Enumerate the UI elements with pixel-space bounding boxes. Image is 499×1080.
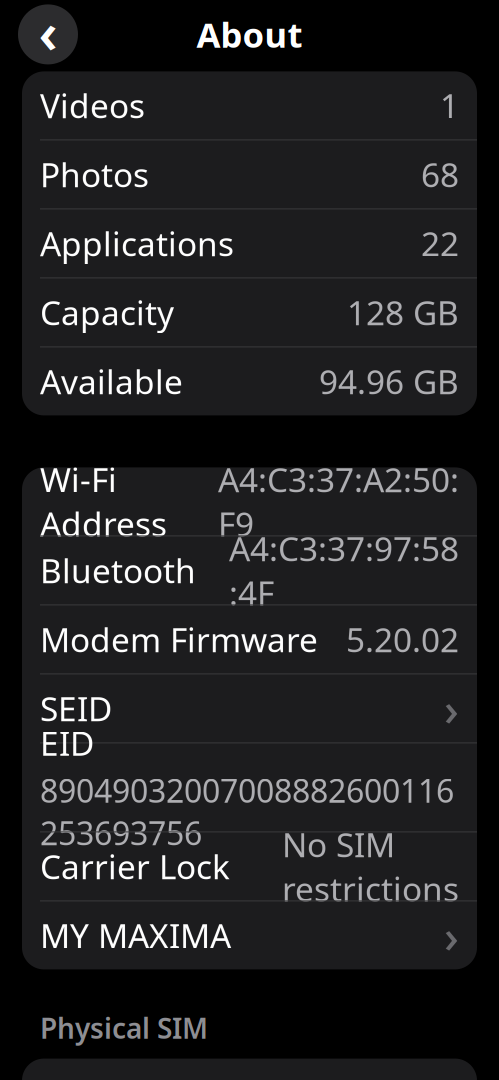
staticText: Bluetooth — [40, 548, 196, 593]
button[interactable]: Wi-Fi Address — [22, 467, 477, 535]
staticText: 68 — [421, 152, 459, 197]
button[interactable]: Videos — [22, 71, 477, 139]
staticText: Photos — [40, 152, 149, 197]
staticText: Wi-Fi Address — [40, 457, 167, 546]
staticText: EID — [40, 721, 94, 765]
staticText: Physical SIM — [40, 1009, 208, 1047]
staticText: › — [444, 678, 459, 738]
button[interactable]: Capacity — [22, 278, 477, 346]
staticText: Videos — [40, 83, 145, 128]
button[interactable]: Modem Firmware — [22, 605, 477, 673]
staticText: A4:C3:37:97:58:4F — [229, 526, 459, 615]
staticText: About — [196, 11, 302, 57]
staticText: 22 — [421, 221, 459, 266]
button[interactable]: Carrier Lock — [22, 832, 477, 900]
staticText: 89049032007008882600116253693756 — [40, 769, 454, 854]
button[interactable]: Available — [22, 347, 477, 415]
staticText: No SIM restrictions — [282, 822, 459, 911]
staticText: 128 GB — [347, 290, 459, 335]
staticText: Capacity — [40, 290, 174, 335]
button[interactable]: EID — [22, 743, 477, 831]
staticText: SEID — [40, 686, 112, 731]
button[interactable]: Back — [18, 4, 78, 64]
staticText: Modem Firmware — [40, 617, 318, 662]
button[interactable]: Bluetooth — [22, 536, 477, 604]
staticText: 94.96 GB — [319, 359, 459, 404]
staticText: 5.20.02 — [346, 617, 459, 662]
staticText: Applications — [40, 221, 234, 266]
staticText: Available — [40, 359, 183, 404]
staticText: A4:C3:37:A2:50:F9 — [218, 457, 459, 546]
button[interactable]: MY MAXIMA — [22, 901, 477, 969]
staticText: › — [444, 905, 459, 965]
staticText: ‹ — [38, 0, 57, 69]
button[interactable]: SEID — [22, 674, 477, 742]
staticText: Carrier Lock — [40, 844, 230, 889]
staticText: MY MAXIMA — [40, 913, 231, 958]
button[interactable] — [22, 1059, 477, 1080]
button[interactable]: Photos — [22, 140, 477, 208]
staticText: 1 — [440, 83, 459, 128]
button[interactable]: Applications — [22, 209, 477, 277]
